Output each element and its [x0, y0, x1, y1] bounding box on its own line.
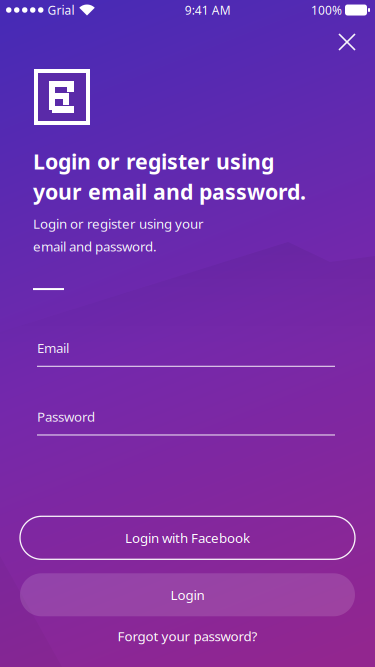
staticText: 100%	[311, 2, 342, 18]
staticText: Email	[37, 339, 69, 357]
button[interactable]: Login	[20, 573, 355, 616]
button[interactable]: Close	[327, 22, 367, 62]
button[interactable]: Forgot your password?	[117, 627, 257, 645]
staticText: 9:41 AM	[185, 2, 231, 18]
button[interactable]: Email	[37, 339, 335, 367]
button[interactable]: Password	[37, 408, 335, 435]
staticText: Login or register using your email and p…	[33, 147, 306, 206]
staticText: Login with Facebook	[125, 529, 250, 547]
staticText: Grial	[47, 2, 74, 18]
staticText: Forgot your password?	[117, 627, 257, 645]
button[interactable]: Login with Facebook	[20, 516, 355, 559]
staticText: Password	[37, 408, 95, 425]
staticText: Login or register using your email and p…	[33, 215, 204, 255]
staticText: Login	[170, 586, 204, 604]
